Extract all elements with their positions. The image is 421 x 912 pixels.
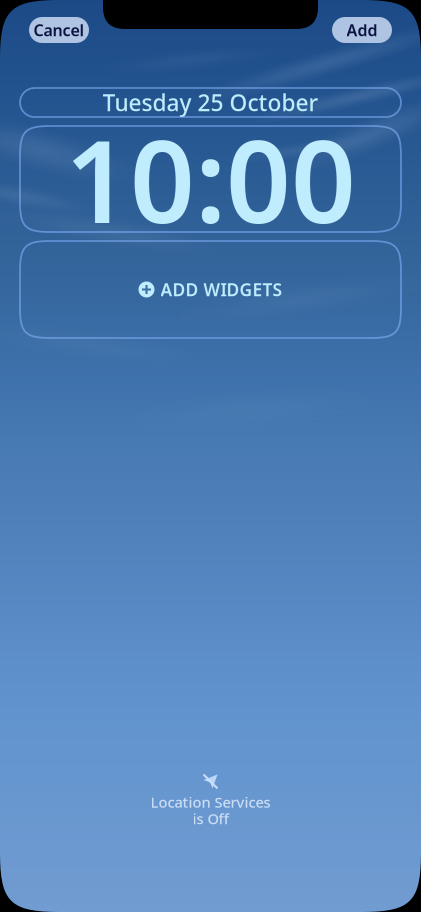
staticText: Tuesday 25 October (102, 87, 318, 117)
staticText: Location Services (150, 792, 270, 812)
button[interactable]: Tuesday 25 October (20, 88, 401, 117)
staticText: 10:00 (65, 104, 356, 254)
staticText: ADD WIDGETS (160, 278, 282, 301)
staticText: Add (346, 19, 377, 41)
button[interactable]: ADD WIDGETS (20, 241, 401, 338)
button[interactable]: Add (332, 17, 392, 43)
button[interactable]: 10:00 (20, 126, 401, 232)
staticText: Cancel (33, 19, 84, 41)
staticText: is Off (192, 809, 228, 828)
button[interactable]: Cancel (29, 17, 89, 43)
